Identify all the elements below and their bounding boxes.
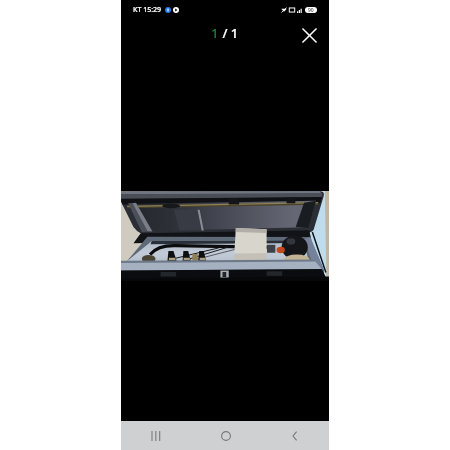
staticText: 90	[308, 7, 314, 13]
button[interactable]: Home	[191, 421, 260, 450]
button[interactable]: Back	[260, 421, 329, 450]
staticText: 1	[211, 24, 219, 42]
staticText: / 1	[219, 24, 239, 42]
staticText: KT 15:29	[133, 5, 162, 15]
button[interactable]: Close	[296, 22, 322, 48]
button[interactable]: Recents	[121, 421, 191, 450]
